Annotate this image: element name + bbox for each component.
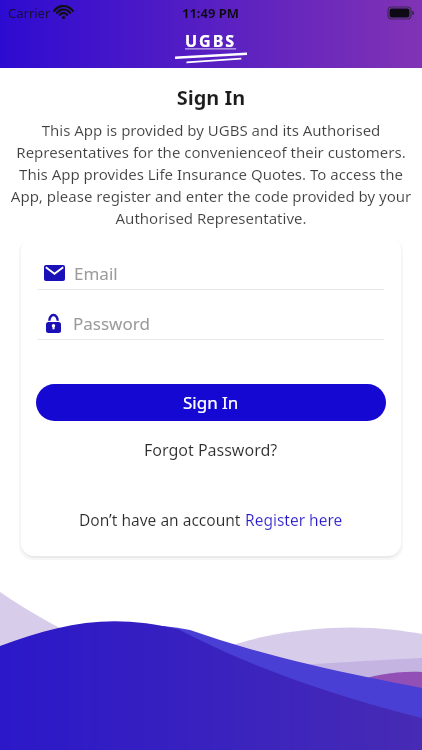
staticText: Sign In (183, 391, 239, 414)
staticText: This App is provided by UGBS and its Aut… (0, 120, 422, 229)
staticText: Sign In (0, 84, 422, 111)
staticText: Carrier (8, 4, 51, 22)
staticText: 11:49 PM (182, 4, 240, 22)
button[interactable]: Sign In (36, 384, 386, 421)
staticText: Don’t have an account (79, 509, 245, 530)
button[interactable]: Register here (245, 509, 343, 530)
staticText: UGBS (185, 30, 237, 52)
button[interactable]: Email (44, 257, 401, 289)
staticText: Register here (245, 509, 343, 530)
button[interactable]: Password (46, 307, 401, 339)
staticText: Password (73, 312, 150, 335)
staticText: Forgot Password? (144, 439, 278, 461)
button[interactable]: Forgot Password? (144, 439, 278, 461)
staticText: Email (74, 262, 118, 285)
